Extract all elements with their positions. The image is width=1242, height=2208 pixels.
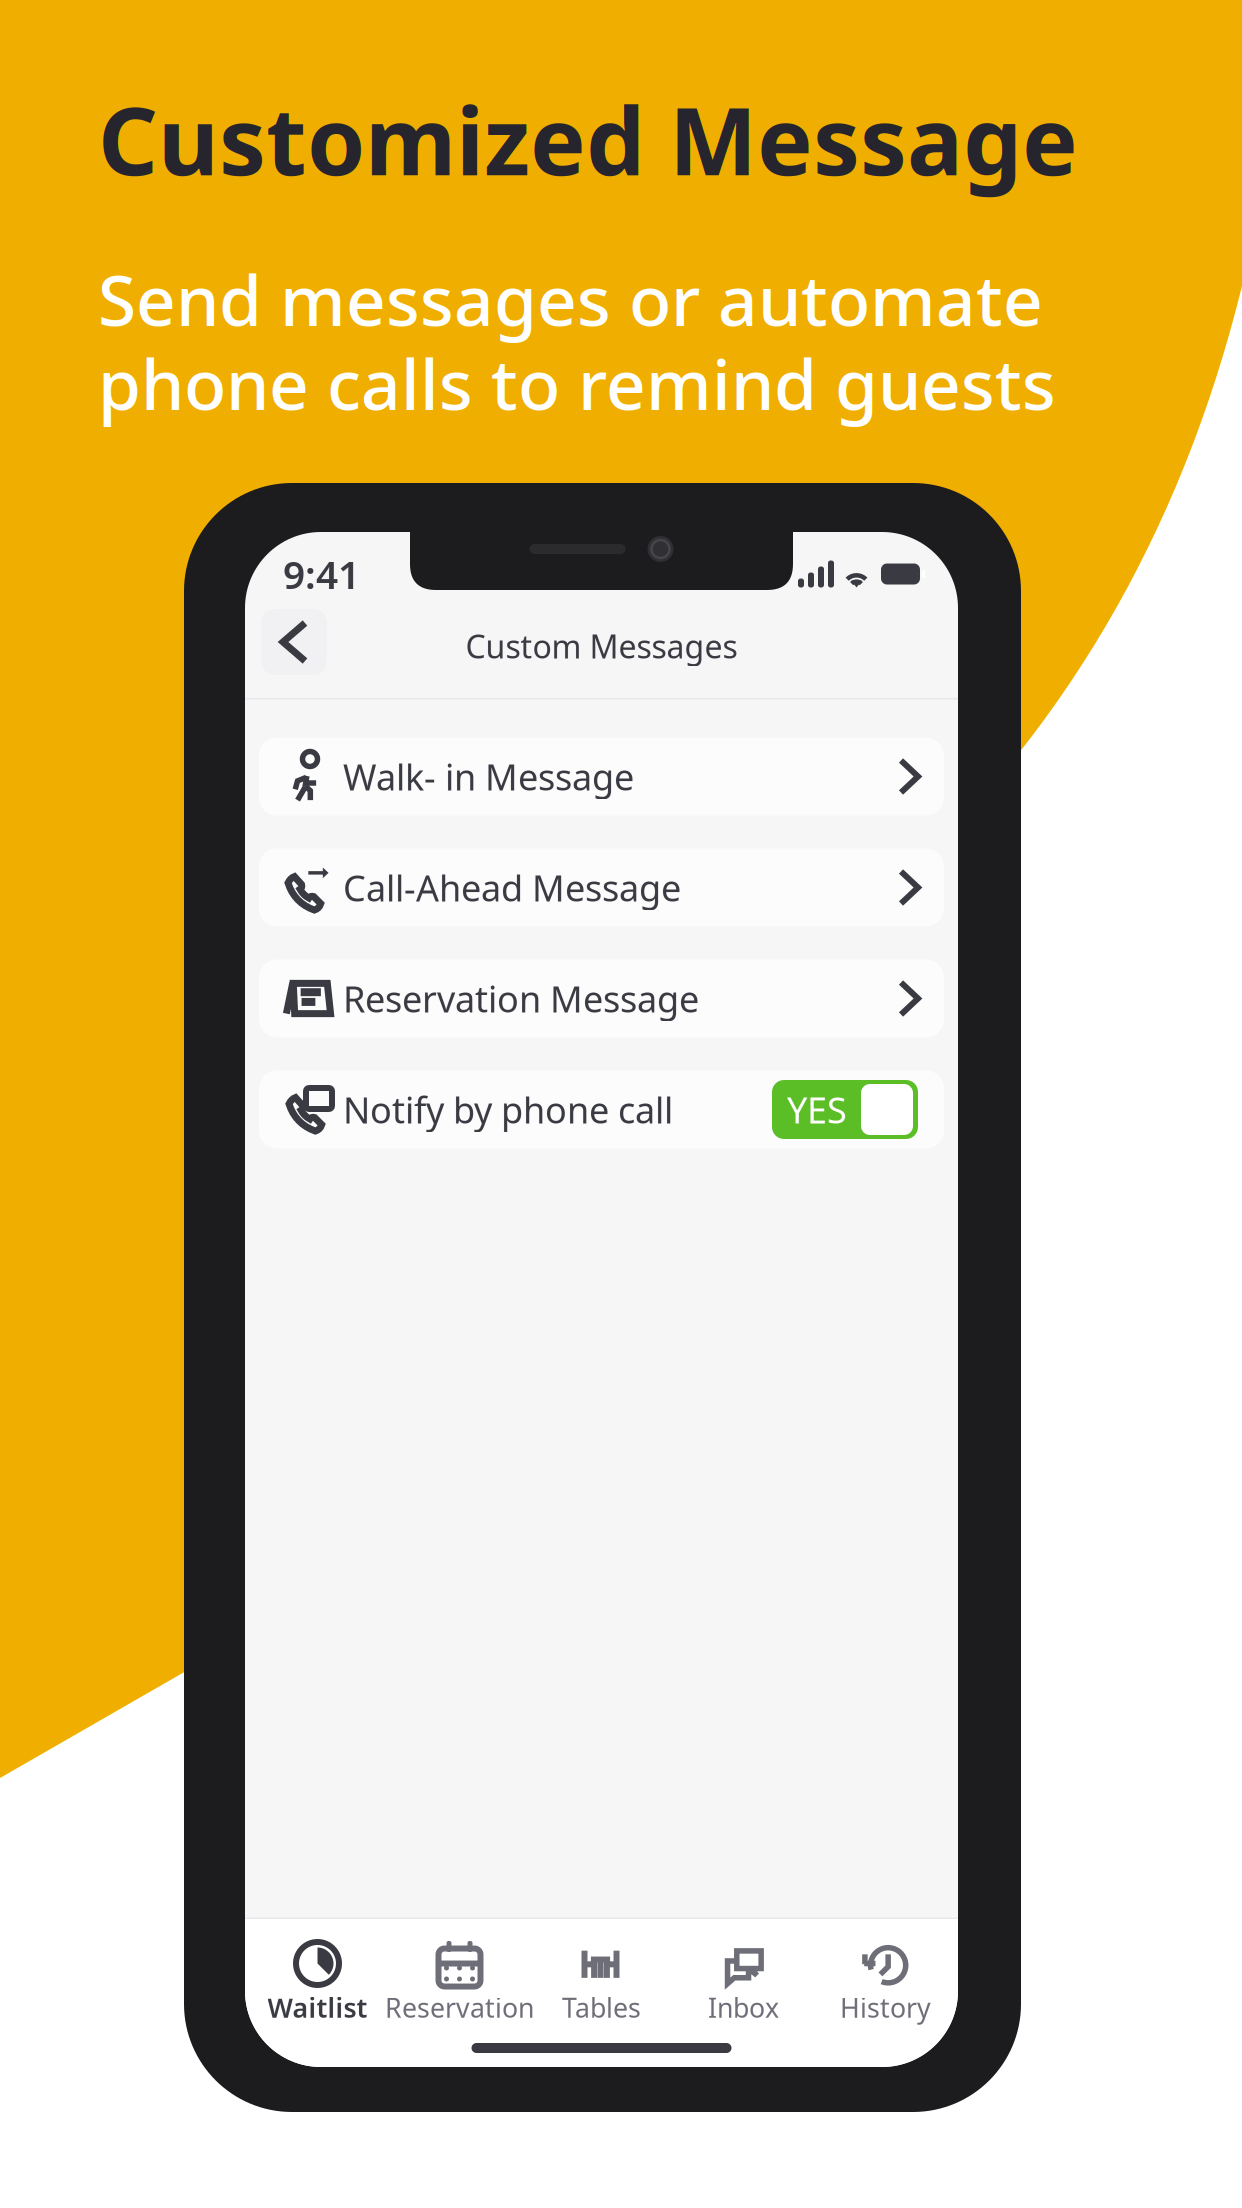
- staticText: Waitlist: [267, 1990, 367, 2025]
- staticText: 9:41: [283, 548, 360, 600]
- staticText: Tables: [562, 1990, 641, 2025]
- button[interactable]: Waitlist: [246, 1939, 388, 2021]
- button[interactable]: Tables: [530, 1939, 672, 2021]
- staticText: Notify by phone call: [343, 1086, 673, 1133]
- button[interactable]: Back: [261, 609, 327, 675]
- staticText: Customized Message: [98, 77, 1078, 201]
- staticText: Reservation: [385, 1990, 534, 2025]
- staticText: Custom Messages: [465, 625, 737, 667]
- button[interactable]: Reservation: [388, 1939, 530, 2021]
- staticText: YES: [787, 1086, 847, 1133]
- staticText: phone calls to remind guests: [98, 337, 1056, 429]
- staticText: History: [840, 1990, 931, 2025]
- button[interactable]: Walk- in Message: [259, 737, 944, 815]
- button[interactable]: Notify by phone call: [259, 1070, 944, 1148]
- staticText: Inbox: [708, 1990, 779, 2025]
- button[interactable]: Reservation Message: [259, 959, 944, 1037]
- staticText: Reservation Message: [343, 975, 699, 1022]
- staticText: Walk- in Message: [343, 753, 634, 800]
- button[interactable]: Inbox: [672, 1939, 814, 2021]
- button[interactable]: History: [814, 1939, 956, 2021]
- button[interactable]: Call-Ahead Message: [259, 848, 944, 926]
- staticText: Call-Ahead Message: [343, 864, 681, 911]
- staticText: Send messages or automate: [98, 253, 1043, 345]
